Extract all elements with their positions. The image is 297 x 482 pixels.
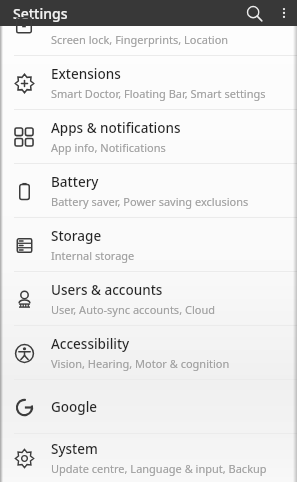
staticText: User, Auto-sync accounts, Cloud: [51, 302, 215, 317]
staticText: Apps & notifications: [51, 119, 181, 137]
staticText: Storage: [51, 227, 102, 245]
button[interactable]: Storage: [0, 218, 297, 271]
button[interactable]: System: [0, 434, 297, 482]
button[interactable]: Apps & notifications: [0, 110, 297, 163]
staticText: Users & accounts: [51, 281, 163, 299]
staticText: Internal storage: [51, 248, 135, 263]
staticText: Battery saver, Power saving exclusions: [51, 194, 249, 209]
staticText: Accessibility: [51, 335, 130, 353]
button[interactable]: Search: [237, 0, 271, 26]
staticText: Screen lock, Fingerprints, Location: [51, 32, 229, 47]
staticText: Vision, Hearing, Motor & cognition: [51, 356, 230, 371]
staticText: Battery: [51, 173, 99, 191]
staticText: Extensions: [51, 65, 121, 83]
button[interactable]: Screen lock, Fingerprints, Location: [0, 26, 297, 55]
button[interactable]: Users & accounts: [0, 272, 297, 325]
button[interactable]: More options: [271, 0, 297, 26]
button[interactable]: Extensions: [0, 56, 297, 109]
button[interactable]: Google: [0, 380, 297, 433]
button[interactable]: Accessibility: [0, 326, 297, 379]
staticText: System: [51, 440, 98, 458]
staticText: Update centre, Language & input, Backup: [51, 461, 267, 476]
staticText: Settings: [13, 4, 68, 23]
button[interactable]: Battery: [0, 164, 297, 217]
staticText: Smart Doctor, Floating Bar, Smart settin…: [51, 86, 266, 101]
staticText: Google: [51, 398, 98, 416]
staticText: App info, Notifications: [51, 140, 166, 155]
